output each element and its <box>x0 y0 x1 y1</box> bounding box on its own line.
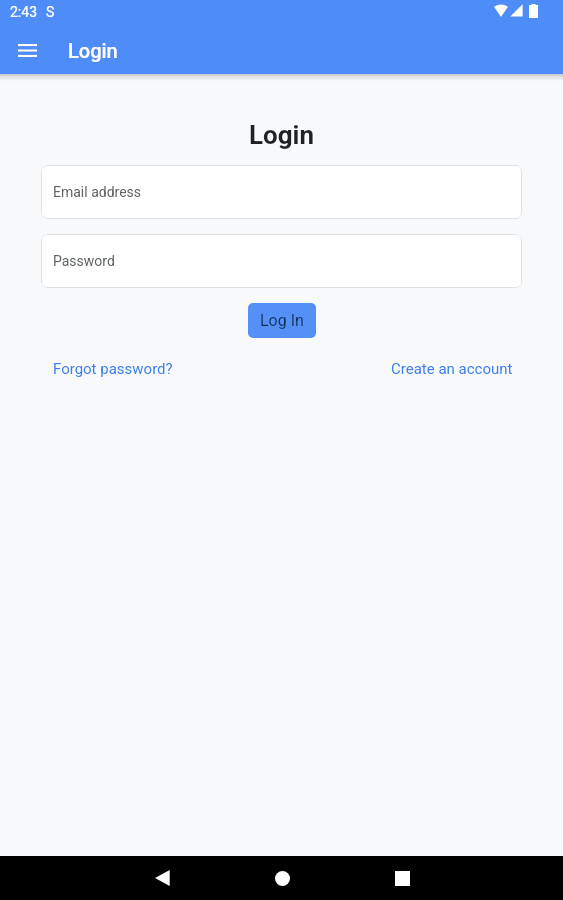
staticText: Password <box>53 253 115 269</box>
button[interactable]: Back <box>138 856 186 900</box>
button[interactable]: Password <box>41 234 522 288</box>
staticText: Login <box>68 39 118 62</box>
button[interactable]: Home <box>258 856 306 900</box>
staticText: Login <box>0 120 563 150</box>
button[interactable]: Create an account <box>385 354 519 384</box>
button[interactable]: Open navigation menu <box>7 30 47 70</box>
staticText: Email address <box>53 184 142 200</box>
staticText: S <box>46 4 55 20</box>
button[interactable]: Email address <box>41 165 522 219</box>
staticText: 2:43 <box>10 4 37 20</box>
button[interactable]: Recent apps <box>378 856 426 900</box>
button[interactable]: Log In <box>248 303 316 338</box>
staticText: Create an account <box>391 360 513 378</box>
staticText: Forgot password? <box>53 360 173 378</box>
button[interactable]: Forgot password? <box>47 354 179 384</box>
staticText: Log In <box>260 311 304 330</box>
